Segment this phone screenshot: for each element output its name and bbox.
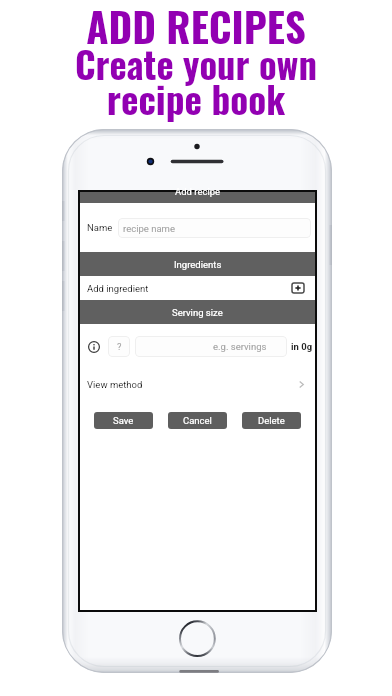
- button[interactable]: View method: [80, 369, 315, 400]
- staticText: View method: [87, 379, 143, 390]
- staticText: Serving size: [172, 307, 223, 318]
- button[interactable]: Cancel: [168, 412, 227, 429]
- staticText: ?: [117, 341, 122, 352]
- button[interactable]: Serving size: [80, 300, 315, 324]
- staticText: Cancel: [183, 415, 212, 426]
- staticText: Delete: [258, 415, 285, 426]
- button[interactable]: Save: [94, 412, 153, 429]
- staticText: Name: [87, 222, 113, 233]
- button[interactable]: Name: [80, 203, 315, 252]
- staticText: recipe name: [123, 223, 175, 234]
- button[interactable]: Add ingredient: [80, 276, 315, 300]
- button[interactable]: Add ingredient: [292, 283, 304, 293]
- staticText: ADD RECIPES: [0, 0, 392, 56]
- button[interactable]: ?: [108, 336, 130, 357]
- button[interactable]: e.g. servings: [135, 336, 287, 357]
- staticText: Add recipe: [175, 186, 221, 197]
- staticText: Save: [113, 415, 134, 426]
- staticText: recipe book: [0, 71, 392, 126]
- staticText: e.g. servings: [213, 341, 267, 352]
- button[interactable]: Information: [88, 341, 100, 353]
- staticText: Create your own: [0, 36, 392, 90]
- staticText: Add ingredient: [87, 283, 149, 294]
- staticText: Ingredients: [174, 259, 222, 270]
- staticText: in 0g: [291, 341, 313, 352]
- button[interactable]: Ingredients: [80, 252, 315, 276]
- button[interactable]: Add recipe: [80, 192, 315, 203]
- button[interactable]: Delete: [242, 412, 301, 429]
